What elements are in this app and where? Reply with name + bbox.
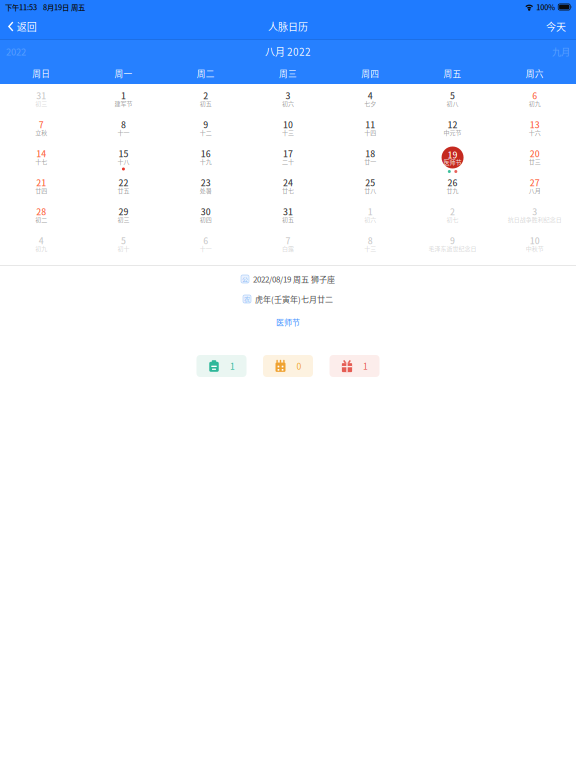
button[interactable]: 31 xyxy=(247,202,329,231)
button[interactable]: 20 xyxy=(494,144,576,173)
button[interactable]: 6 xyxy=(165,231,247,260)
button[interactable]: 11 xyxy=(329,115,411,144)
staticText: 初七 xyxy=(447,215,459,224)
staticText: 白露 xyxy=(282,244,294,253)
staticText: 16 xyxy=(201,147,211,160)
button[interactable]: 1 xyxy=(329,355,379,377)
button[interactable]: 1 xyxy=(82,86,165,115)
button[interactable]: 17 xyxy=(247,144,329,173)
staticText: 27 xyxy=(530,176,540,189)
staticText: 十二 xyxy=(200,128,212,137)
button[interactable]: 5 xyxy=(82,231,165,260)
staticText: 十六 xyxy=(529,128,541,137)
staticText: 廿五 xyxy=(117,186,129,195)
staticText: 周二 xyxy=(197,67,215,80)
button[interactable]: 30 xyxy=(165,202,247,231)
staticText: 处暑 xyxy=(200,186,212,195)
staticText: 2 xyxy=(450,205,455,218)
staticText: 2 xyxy=(203,89,208,102)
staticText: 十四 xyxy=(364,128,376,137)
staticText: 3 xyxy=(532,205,537,218)
staticText: 十一 xyxy=(200,244,212,253)
staticText: 十三 xyxy=(364,244,376,253)
button[interactable]: 2022 xyxy=(0,40,34,62)
button[interactable]: 31 xyxy=(0,86,82,115)
staticText: 23 xyxy=(201,176,211,189)
staticText: 初九 xyxy=(529,99,541,108)
staticText: 立秋 xyxy=(35,128,47,137)
staticText: 初五 xyxy=(200,99,212,108)
button[interactable]: 2 xyxy=(165,86,247,115)
button[interactable]: 22 xyxy=(82,173,165,202)
staticText: 医师节 xyxy=(276,316,300,328)
button[interactable]: 24 xyxy=(247,173,329,202)
button[interactable]: 21 xyxy=(0,173,82,202)
button[interactable]: 19 xyxy=(411,144,494,173)
staticText: 中元节 xyxy=(444,128,462,137)
staticText: 28 xyxy=(36,205,46,218)
button[interactable]: 26 xyxy=(411,173,494,202)
button[interactable]: 15 xyxy=(82,144,165,173)
button[interactable]: 9 xyxy=(165,115,247,144)
button[interactable]: 九月 xyxy=(544,40,576,62)
staticText: 廿八 xyxy=(364,186,376,195)
staticText: 周一 xyxy=(114,67,132,80)
staticText: 29 xyxy=(118,205,128,218)
button[interactable]: 返回 xyxy=(0,14,45,39)
staticText: 廿七 xyxy=(282,186,294,195)
staticText: 26 xyxy=(448,176,458,189)
button[interactable]: 25 xyxy=(329,173,411,202)
button[interactable]: 29 xyxy=(82,202,165,231)
staticText: 5 xyxy=(450,89,455,102)
button[interactable]: 3 xyxy=(494,202,576,231)
staticText: 周五 xyxy=(444,67,462,80)
button[interactable]: 1 xyxy=(196,355,246,377)
button[interactable]: 27 xyxy=(494,173,576,202)
staticText: 100% xyxy=(536,2,555,12)
button[interactable]: 23 xyxy=(165,173,247,202)
staticText: 十七 xyxy=(35,157,47,166)
button[interactable]: 7 xyxy=(247,231,329,260)
button[interactable]: 12 xyxy=(411,115,494,144)
staticText: 八月 2022 xyxy=(265,44,311,59)
staticText: 九月 xyxy=(552,45,570,58)
button[interactable]: 医师节 xyxy=(276,316,300,328)
staticText: 医师节 xyxy=(444,157,462,166)
button[interactable]: 9 xyxy=(411,231,494,260)
staticText: 6 xyxy=(203,234,208,247)
button[interactable]: 4 xyxy=(0,231,82,260)
staticText: 廿九 xyxy=(447,186,459,195)
button[interactable]: 8 xyxy=(329,231,411,260)
staticText: 13 xyxy=(530,118,540,131)
staticText: 返回 xyxy=(17,19,37,34)
button[interactable]: 1 xyxy=(329,202,411,231)
button[interactable]: 10 xyxy=(247,115,329,144)
staticText: 廿四 xyxy=(35,186,47,195)
staticText: 4 xyxy=(368,89,373,102)
staticText: 6 xyxy=(532,89,537,102)
button[interactable]: 7 xyxy=(0,115,82,144)
staticText: 廿三 xyxy=(529,157,541,166)
button[interactable]: 5 xyxy=(411,86,494,115)
staticText: 今天 xyxy=(546,19,566,34)
staticText: 农 xyxy=(244,295,250,303)
button[interactable]: 10 xyxy=(494,231,576,260)
staticText: 初十 xyxy=(117,244,129,253)
button[interactable]: 今天 xyxy=(538,14,576,39)
staticText: 下午11:53 8月19日 周五 xyxy=(5,2,85,12)
button[interactable]: 14 xyxy=(0,144,82,173)
button[interactable]: 28 xyxy=(0,202,82,231)
staticText: 25 xyxy=(365,176,375,189)
staticText: 17 xyxy=(283,147,293,160)
button[interactable]: 2 xyxy=(411,202,494,231)
button[interactable]: 16 xyxy=(165,144,247,173)
button[interactable]: 3 xyxy=(247,86,329,115)
staticText: 1 xyxy=(368,205,373,218)
button[interactable]: 13 xyxy=(494,115,576,144)
staticText: 公 xyxy=(242,275,248,283)
button[interactable]: 18 xyxy=(329,144,411,173)
button[interactable]: 6 xyxy=(494,86,576,115)
button[interactable]: 4 xyxy=(329,86,411,115)
button[interactable]: 8 xyxy=(82,115,165,144)
button[interactable]: 0 xyxy=(263,355,313,377)
